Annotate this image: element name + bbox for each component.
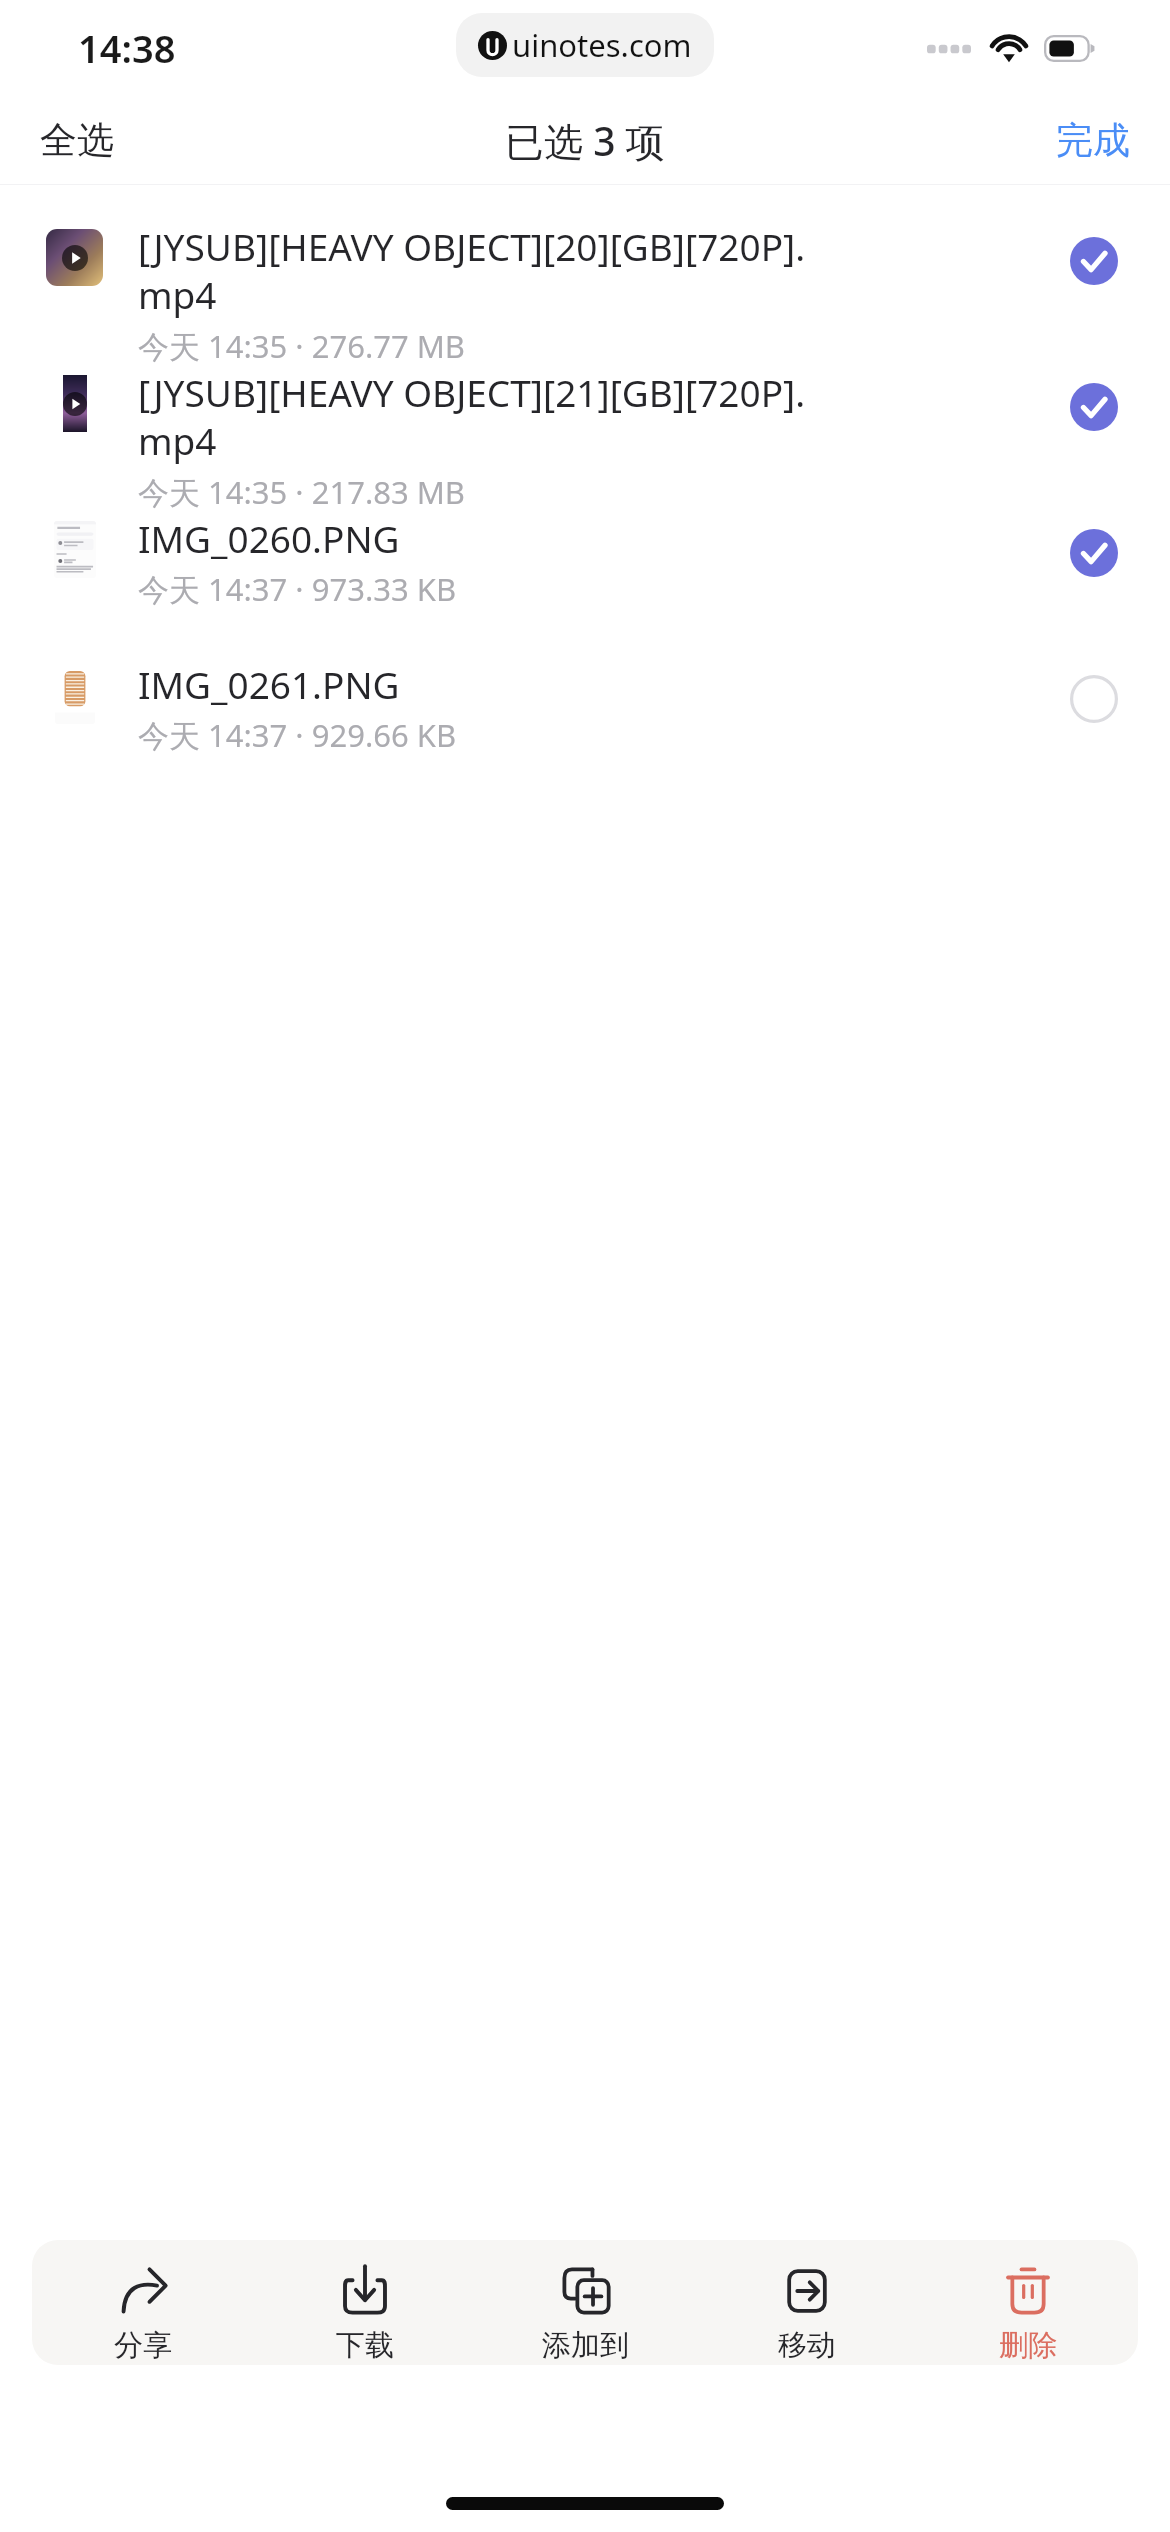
staticText: [JYSUB][HEAVY OBJECT][21][GB][720P]. mp4 (138, 367, 806, 466)
button[interactable]: Selected (1064, 231, 1124, 291)
button[interactable]: Selected (1064, 377, 1124, 437)
staticText: 删除 (999, 2327, 1057, 2364)
button[interactable]: 完成 (1032, 107, 1170, 174)
staticText: 全选 (40, 117, 114, 164)
staticText: IMG_0260.PNG (138, 513, 400, 563)
button[interactable]: [JYSUB][HEAVY OBJECT][20][GB][720P]. mp4 (0, 217, 1170, 363)
other: Download (338, 2264, 392, 2318)
staticText: 下载 (336, 2327, 394, 2364)
staticText: 移动 (778, 2327, 836, 2364)
staticText: 14:38 (78, 22, 176, 74)
staticText: [JYSUB][HEAVY OBJECT][20][GB][720P]. mp4 (138, 221, 806, 320)
staticText: uinotes.com (512, 24, 692, 66)
button[interactable]: Add to (475, 2240, 696, 2365)
button[interactable]: Download (254, 2240, 475, 2365)
staticText: 已选 3 项 (505, 114, 665, 167)
button[interactable]: Move (696, 2240, 917, 2365)
other: Delete (1001, 2264, 1055, 2318)
other: Add to (559, 2264, 613, 2318)
other: Share (116, 2264, 170, 2318)
button[interactable]: Not selected (1064, 669, 1124, 729)
other: Move (780, 2264, 834, 2318)
staticText: 今天 14:35 · 276.77 MB (138, 325, 466, 363)
staticText: 添加到 (542, 2327, 629, 2364)
staticText: 今天 14:37 · 929.66 KB (138, 714, 457, 756)
staticText: IMG_0261.PNG (138, 659, 400, 709)
button[interactable]: 全选 (0, 107, 138, 174)
button[interactable]: [JYSUB][HEAVY OBJECT][21][GB][720P]. mp4 (0, 363, 1170, 509)
button[interactable]: IMG_0261.PNG (0, 655, 1170, 801)
staticText: 今天 14:35 · 217.83 MB (138, 471, 466, 509)
button[interactable]: IMG_0260.PNG (0, 509, 1170, 655)
staticText: 分享 (114, 2327, 172, 2364)
staticText: 今天 14:37 · 973.33 KB (138, 568, 457, 610)
button[interactable]: Share (32, 2240, 254, 2365)
button[interactable]: Selected (1064, 523, 1124, 583)
button[interactable]: Delete (917, 2240, 1138, 2365)
staticText: 完成 (1056, 117, 1130, 164)
